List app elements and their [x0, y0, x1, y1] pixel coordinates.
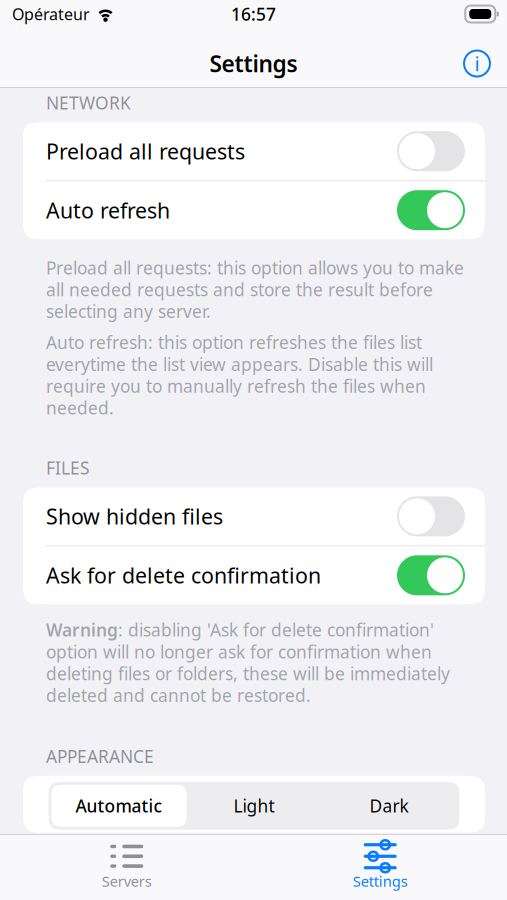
staticText: Automatic	[75, 794, 162, 817]
staticText: Settings	[209, 48, 297, 78]
staticText: Warning: disabling 'Ask for delete confi…	[46, 618, 450, 707]
button[interactable]: Light	[186, 785, 321, 827]
staticText: APPEARANCE	[46, 745, 154, 768]
staticText: Preload all requests	[46, 137, 245, 165]
staticText: Dark	[369, 794, 408, 817]
staticText: Servers	[102, 871, 152, 891]
staticText: Auto refresh	[46, 196, 170, 224]
button[interactable]: Ask for delete confirmation	[23, 546, 485, 604]
staticText: Light	[233, 794, 274, 817]
staticText: Settings	[353, 871, 408, 891]
staticText: i	[474, 50, 479, 77]
staticText: Opérateur	[12, 3, 90, 25]
button[interactable]: Automatic	[51, 785, 186, 827]
staticText: FILES	[46, 456, 90, 479]
button[interactable]: About	[455, 41, 499, 85]
staticText: 16:57	[231, 2, 276, 25]
staticText: NETWORK	[46, 91, 131, 114]
button[interactable]: Auto refresh	[23, 181, 485, 239]
staticText: Preload all requests: this option allows…	[46, 256, 464, 323]
button[interactable]: Settings	[253, 837, 507, 897]
staticText: Show hidden files	[46, 502, 223, 530]
staticText: Ask for delete confirmation	[46, 561, 321, 589]
button[interactable]: Servers	[0, 837, 253, 897]
button[interactable]: Show hidden files	[23, 487, 485, 545]
button[interactable]: Preload all requests	[23, 122, 485, 180]
button[interactable]: Dark	[321, 785, 456, 827]
staticText: Auto refresh: this option refreshes the …	[46, 331, 433, 419]
